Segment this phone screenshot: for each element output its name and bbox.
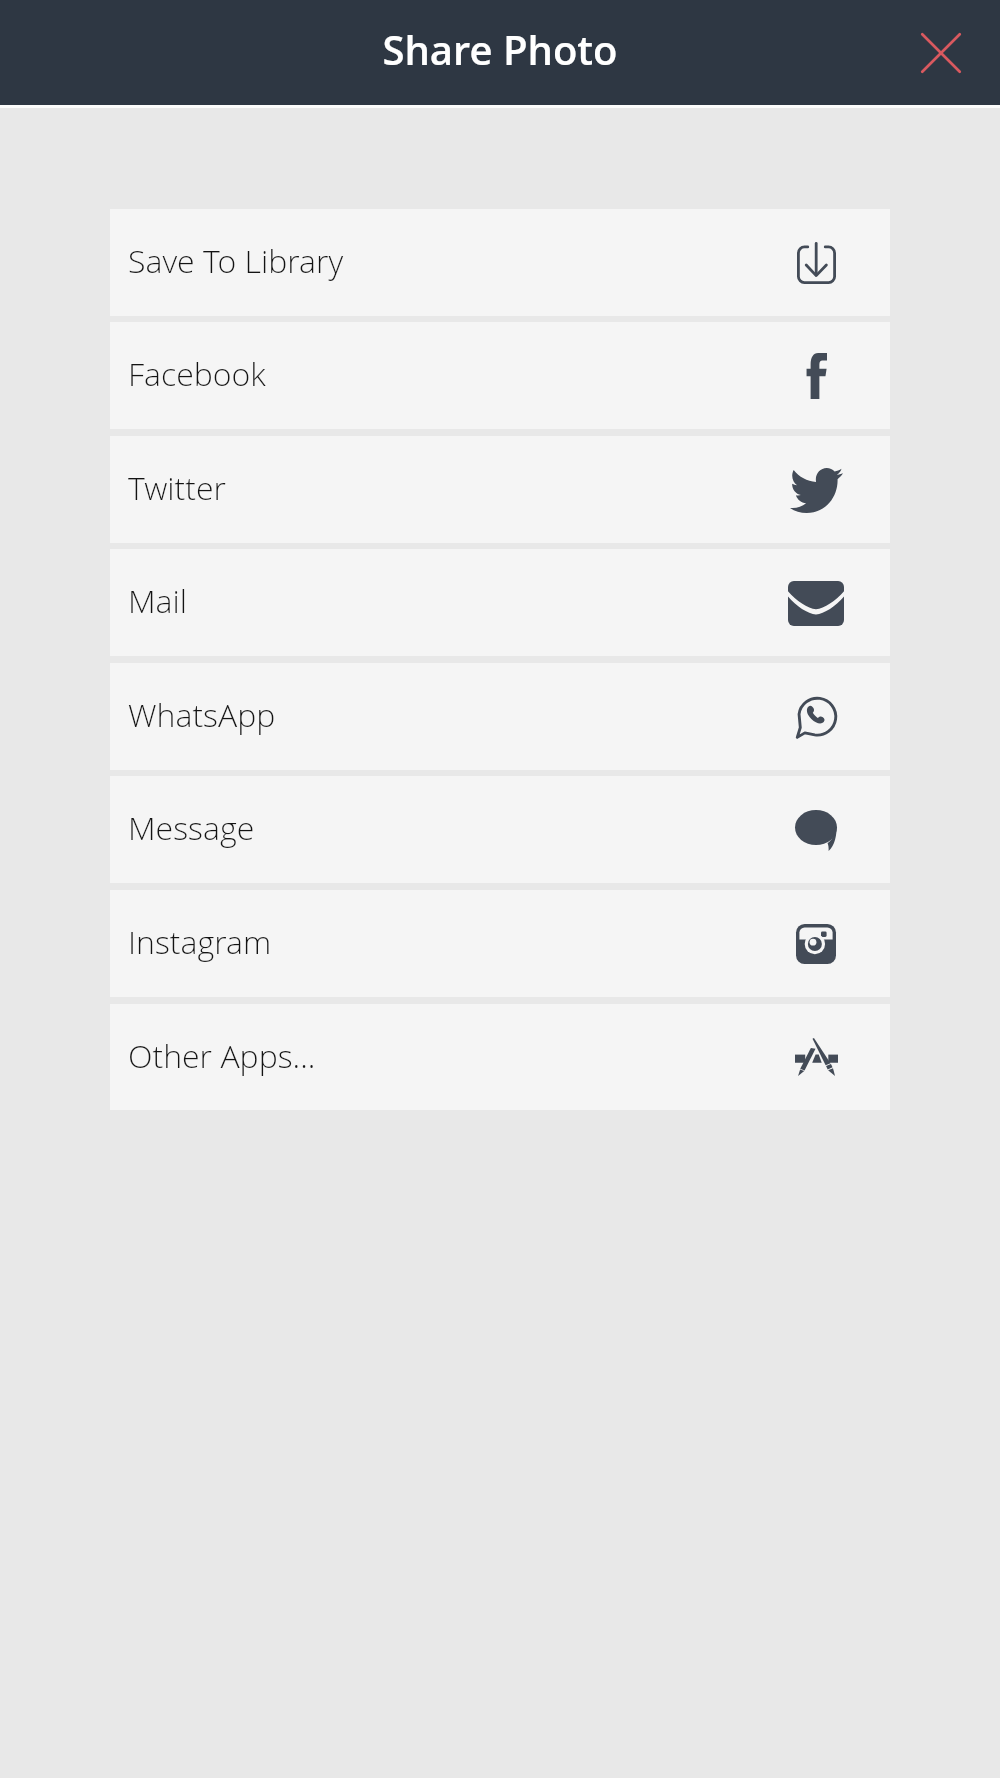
button[interactable]: WhatsApp	[110, 663, 890, 770]
staticText: Other Apps...	[128, 1034, 316, 1078]
button[interactable]: Close	[911, 23, 971, 83]
staticText: Twitter	[128, 466, 226, 510]
button[interactable]: Facebook	[110, 322, 890, 429]
staticText: Message	[128, 806, 255, 850]
button[interactable]: Instagram	[110, 890, 890, 997]
staticText: Save To Library	[128, 239, 344, 283]
button[interactable]: Save To Library	[110, 209, 890, 316]
button[interactable]: Mail	[110, 549, 890, 656]
staticText: Share Photo	[0, 22, 1000, 76]
button[interactable]: Twitter	[110, 436, 890, 543]
button[interactable]: Other Apps...	[110, 1004, 890, 1110]
staticText: Facebook	[128, 352, 266, 396]
staticText: WhatsApp	[128, 693, 276, 737]
staticText: Mail	[128, 579, 188, 623]
button[interactable]: Message	[110, 776, 890, 883]
staticText: Instagram	[128, 920, 272, 964]
